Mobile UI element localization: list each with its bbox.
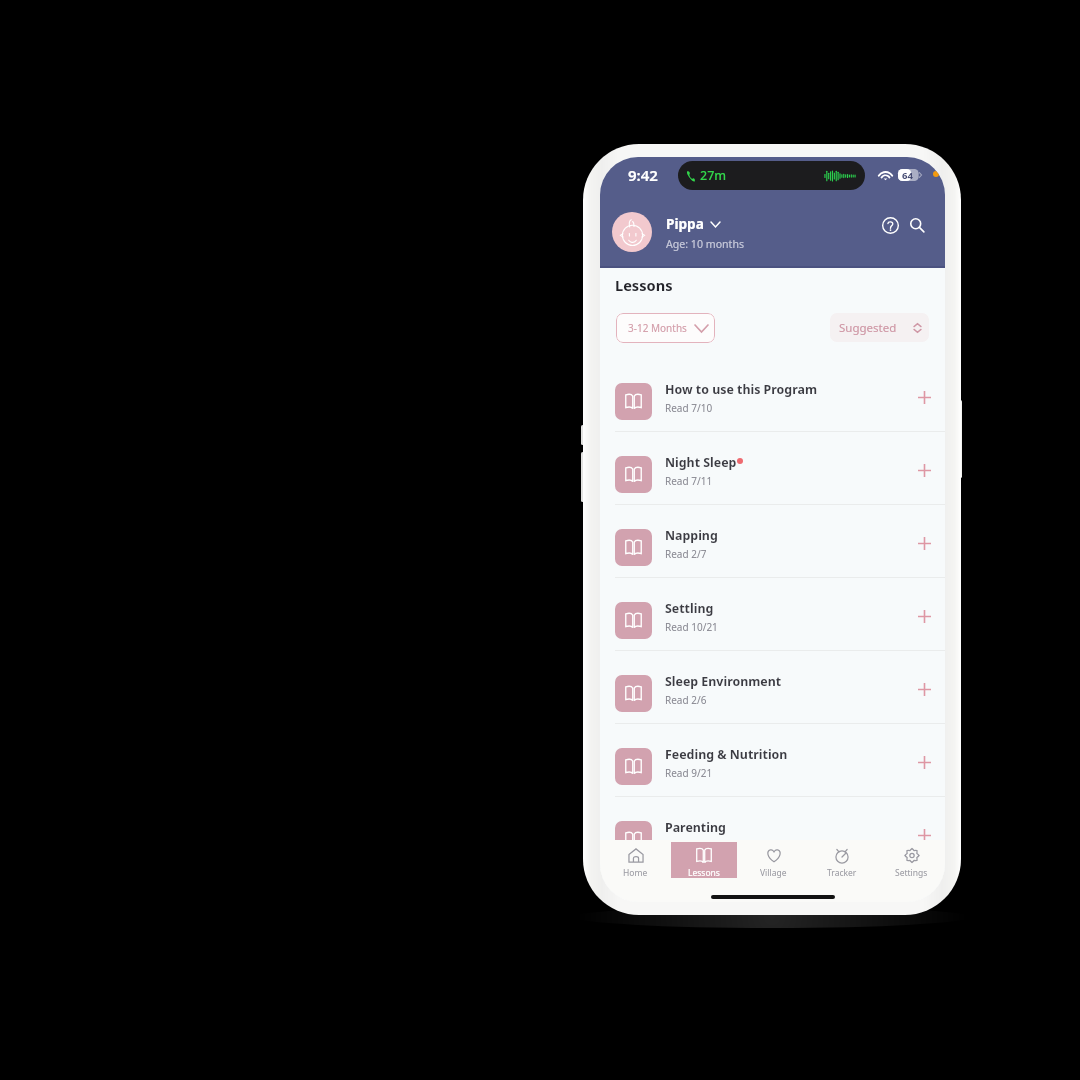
staticText: Home xyxy=(623,867,648,878)
staticText: Parenting xyxy=(665,819,726,836)
staticText: Suggested xyxy=(839,320,897,336)
staticText: Read 10/21 xyxy=(665,620,718,634)
staticText: Night Sleep xyxy=(665,454,737,471)
staticText: How to use this Program xyxy=(665,381,817,398)
button[interactable]: Settings xyxy=(878,842,944,878)
button[interactable]: Add xyxy=(912,458,937,483)
button[interactable]: Home xyxy=(602,842,668,878)
button[interactable]: Add xyxy=(912,385,937,410)
button[interactable]: Add xyxy=(912,604,937,629)
button[interactable]: Village xyxy=(740,842,806,878)
staticText: Settings xyxy=(895,867,928,878)
staticText: 9:42 xyxy=(628,165,658,185)
button[interactable]: Help xyxy=(878,213,902,237)
button[interactable]: Tracker xyxy=(809,842,875,878)
button[interactable]: How to use this Program xyxy=(600,359,945,431)
button[interactable]: Sleep Environment xyxy=(600,651,945,723)
staticText: Read 2/6 xyxy=(665,693,707,707)
button[interactable]: Suggested xyxy=(830,313,929,342)
button[interactable]: Settling xyxy=(600,578,945,650)
staticText: Read 2/7 xyxy=(665,547,707,561)
staticText: Settling xyxy=(665,600,714,617)
staticText: Sleep Environment xyxy=(665,673,782,690)
staticText: Pippa xyxy=(666,214,704,233)
button[interactable]: Napping xyxy=(600,505,945,577)
button[interactable]: Lessons xyxy=(671,842,737,878)
staticText: Lessons xyxy=(615,275,673,295)
staticText: Age: 10 months xyxy=(666,237,745,251)
staticText: Read 7/10 xyxy=(665,401,713,415)
staticText: Read 7/11 xyxy=(665,474,713,488)
button[interactable]: Add xyxy=(912,823,937,848)
staticText: 27m xyxy=(700,167,727,184)
button[interactable]: Feeding & Nutrition xyxy=(600,724,945,796)
staticText: Tracker xyxy=(827,867,857,878)
staticText: Read 9/21 xyxy=(665,766,713,780)
staticText: Read 3/8 xyxy=(665,839,707,853)
staticText: Village xyxy=(760,867,787,878)
button[interactable]: Add xyxy=(912,531,937,556)
staticText: 3-12 Months xyxy=(628,321,687,335)
button[interactable]: Add xyxy=(912,750,937,775)
button[interactable]: Night Sleep xyxy=(600,432,945,504)
staticText: Feeding & Nutrition xyxy=(665,746,788,763)
staticText: Napping xyxy=(665,527,718,544)
button[interactable]: Add xyxy=(912,677,937,702)
staticText: 64 xyxy=(902,169,913,181)
button[interactable]: Parenting xyxy=(600,797,945,869)
button[interactable]: Search xyxy=(905,213,929,237)
staticText: Lessons xyxy=(688,867,720,878)
button[interactable]: 3-12 Months xyxy=(616,313,715,343)
